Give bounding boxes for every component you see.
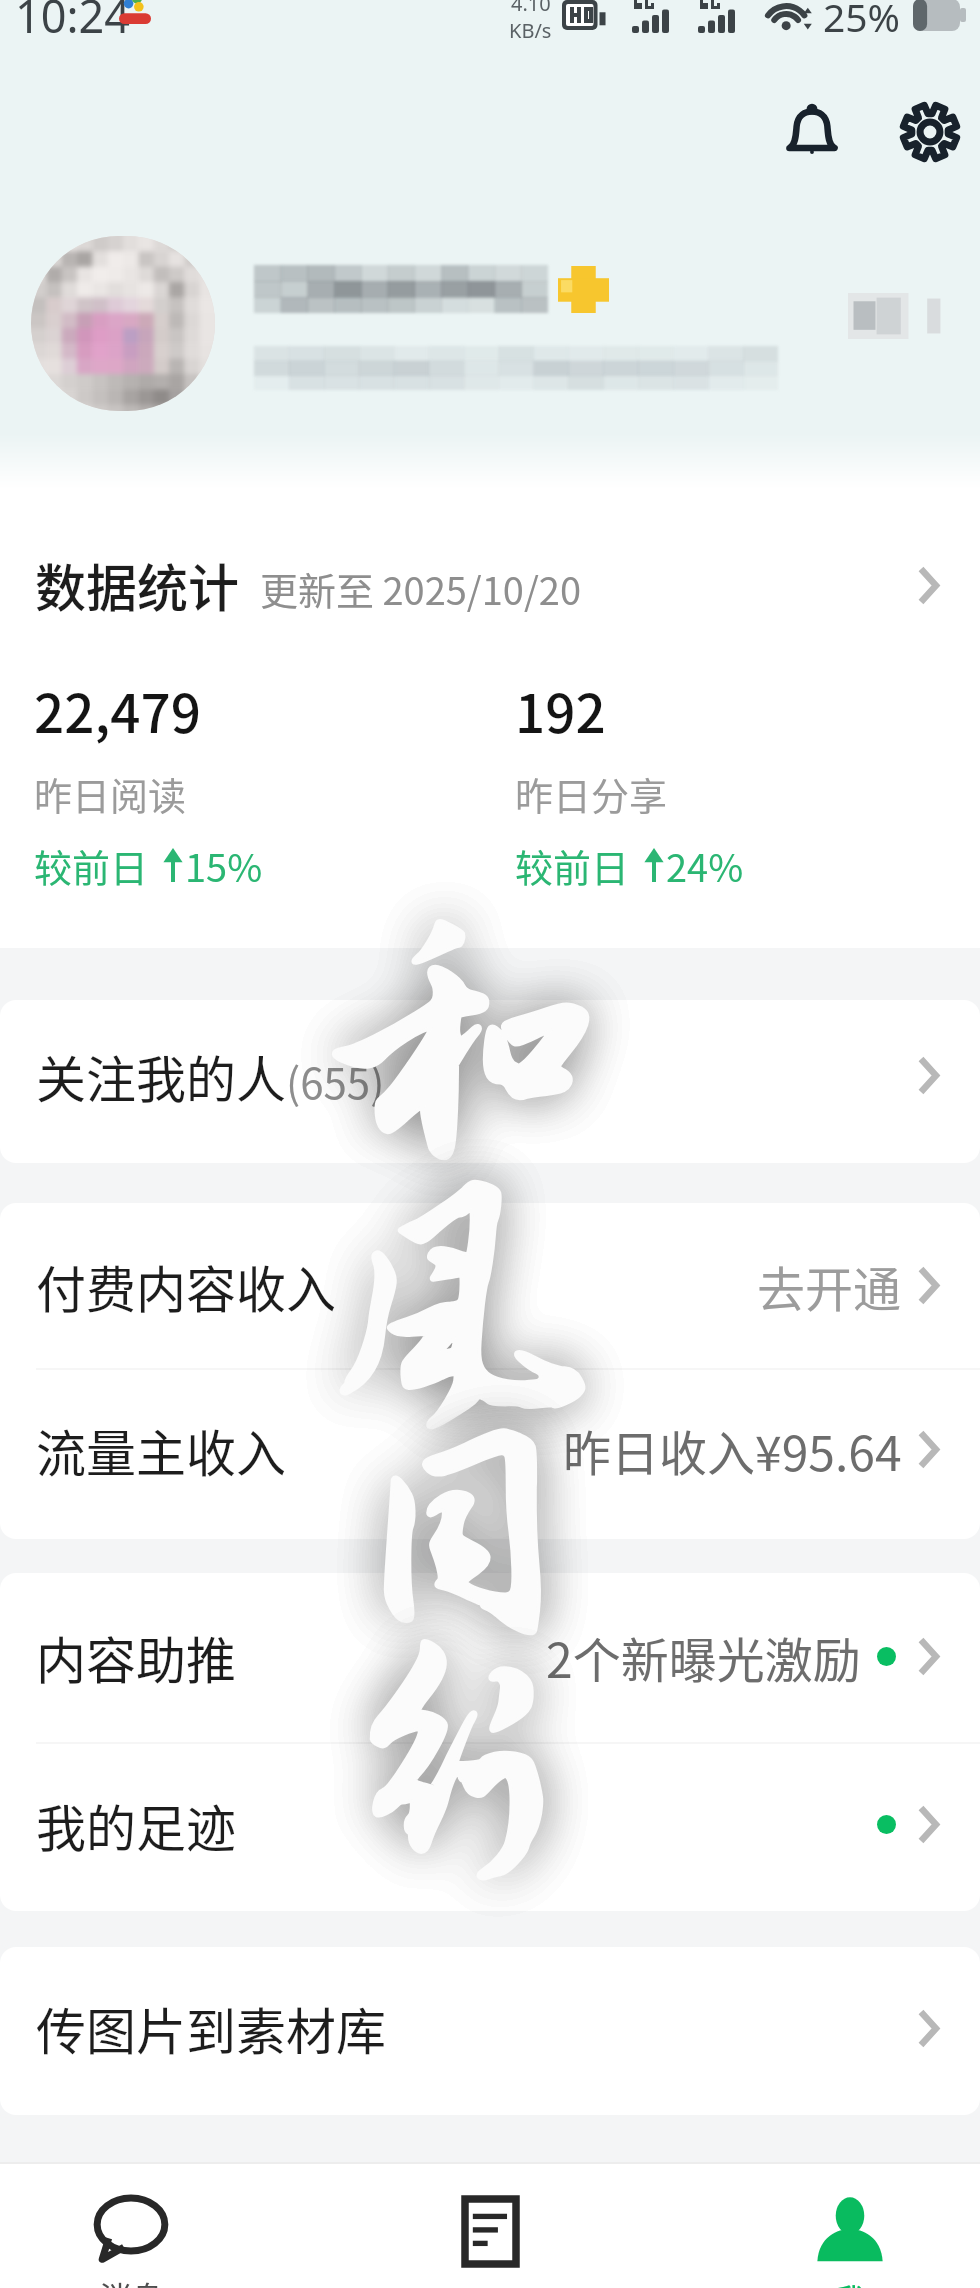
staticText: 同 [332, 1392, 593, 1682]
staticText: 同 [332, 1392, 593, 1682]
staticText: 行 [326, 1620, 587, 1910]
staticText: 和 [330, 900, 591, 1190]
button[interactable]: 流量主收入 [0, 1370, 980, 1539]
staticText: (655) [286, 1050, 385, 1111]
staticText: 关注我的人 [36, 1040, 286, 1112]
staticText: 22,479 [34, 672, 201, 749]
button[interactable]: 内容助推 [0, 1573, 980, 1742]
staticText: 和 [330, 900, 591, 1190]
staticText: 付费内容收入 [36, 1250, 336, 1322]
staticText: 昨日阅读 [34, 766, 187, 821]
staticText: 同 [332, 1392, 593, 1682]
staticText: 去开通 [757, 1251, 902, 1321]
button[interactable]: 关注我的人 [0, 1000, 980, 1163]
staticText: 我的足迹 [36, 1789, 236, 1861]
button[interactable]: Settings [880, 82, 980, 182]
button[interactable]: 我 [700, 2162, 980, 2288]
staticText: 风 [332, 1165, 593, 1455]
button[interactable]: 我的足迹 [0, 1744, 980, 1911]
staticText: 内容助推 [36, 1621, 236, 1693]
staticText: 较前日 [34, 838, 149, 893]
staticText: 行 [326, 1620, 587, 1910]
staticText: 和 [330, 900, 591, 1190]
staticText: 25% [823, 0, 901, 40]
staticText: 较前日 [515, 838, 630, 893]
button[interactable] [0, 240, 980, 415]
staticText: 15% [185, 838, 263, 893]
staticText: 10:24 [15, 0, 131, 35]
button[interactable]: 传图片到素材库 [0, 1947, 980, 2115]
staticText: 2个新曝光激励 [546, 1622, 861, 1692]
staticText: 传图片到素材库 [36, 1992, 386, 2064]
staticText: 4.10 [511, 0, 551, 17]
button[interactable]: 付费内容收入 [0, 1203, 980, 1368]
staticText: 同 [332, 1392, 593, 1682]
staticText: 风 [332, 1165, 593, 1455]
staticText: 192 [515, 672, 606, 749]
staticText: 风 [332, 1165, 593, 1455]
staticText: 行 [326, 1620, 587, 1910]
staticText: 和 [330, 900, 591, 1190]
staticText: 昨日收入¥95.64 [563, 1415, 902, 1485]
staticText: 风 [332, 1165, 593, 1455]
button[interactable]: Notifications [762, 82, 862, 182]
staticText: 和 [330, 900, 591, 1190]
staticText: 风 [332, 1165, 593, 1455]
staticText: 同 [332, 1392, 593, 1682]
button[interactable]: 发表 [340, 2162, 640, 2288]
staticText: 24% [666, 838, 744, 893]
staticText: 数据统计 [35, 548, 240, 622]
staticText: KB/s [509, 17, 552, 40]
staticText: 更新至 2025/10/20 [260, 561, 582, 616]
staticText: 流量主收入 [36, 1414, 286, 1486]
button[interactable]: 消息 [0, 2162, 281, 2288]
staticText: 行 [326, 1620, 587, 1910]
button[interactable]: 数据统计 [0, 531, 980, 639]
staticText: 行 [326, 1620, 587, 1910]
staticText: 昨日分享 [515, 766, 668, 821]
staticText: 我 [834, 2275, 867, 2288]
staticText: 消息 [99, 2273, 164, 2288]
